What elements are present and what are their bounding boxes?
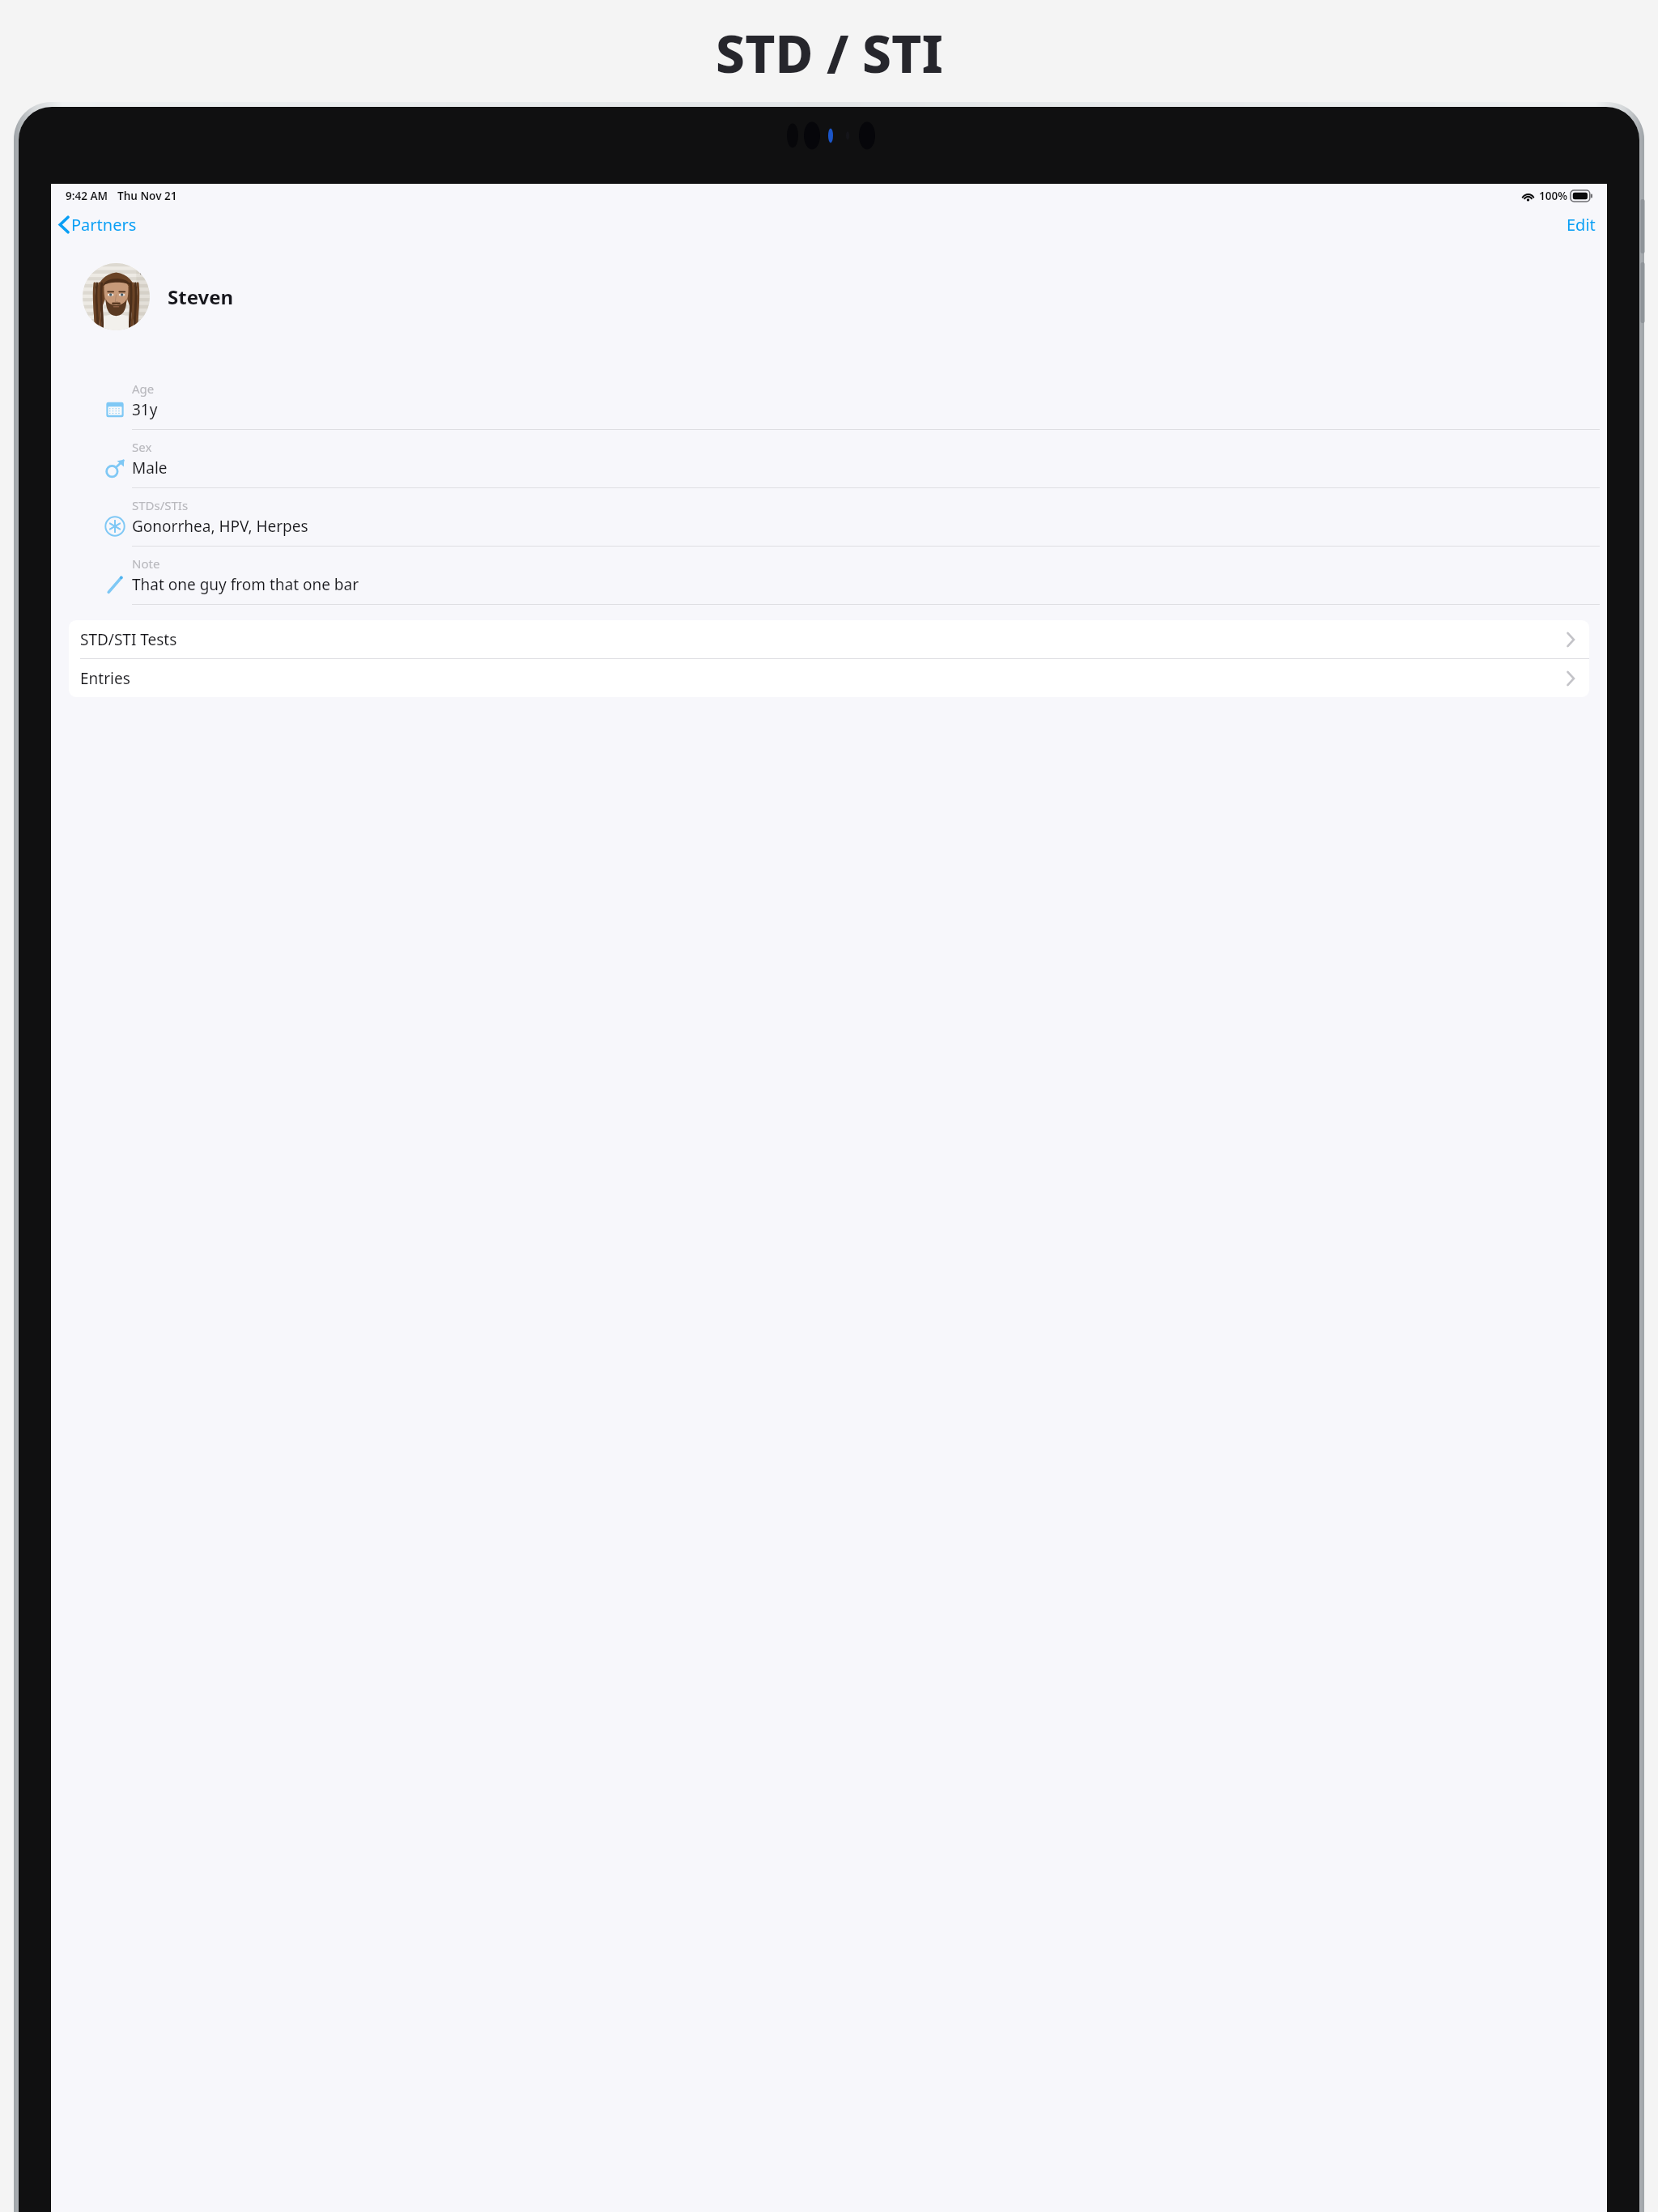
staticText: Partners xyxy=(71,214,137,236)
button[interactable]: STD/STI Tests xyxy=(69,620,1589,658)
staticText: Gonorrhea, HPV, Herpes xyxy=(132,516,308,537)
staticText: Steven xyxy=(168,283,234,310)
staticText: STDs/STIs xyxy=(132,497,189,513)
button[interactable]: Age xyxy=(51,381,1607,439)
staticText: 100% xyxy=(1539,189,1567,203)
button[interactable]: Steven xyxy=(51,257,1607,337)
button[interactable]: Partners xyxy=(51,211,145,239)
staticText: That one guy from that one bar xyxy=(132,574,359,595)
staticText: Track your and your partners' tests xyxy=(478,93,1180,151)
button[interactable]: Entries xyxy=(69,659,1589,697)
button[interactable]: STDs/STIs xyxy=(51,497,1607,555)
staticText: 31y xyxy=(132,399,158,420)
staticText: Sex xyxy=(132,439,152,455)
button[interactable]: Note xyxy=(51,555,1607,614)
button[interactable]: Sex xyxy=(51,439,1607,497)
staticText: Male xyxy=(132,457,168,479)
staticText: 9:42 AM xyxy=(66,189,108,203)
staticText: Note xyxy=(132,555,160,572)
staticText: Edit xyxy=(1567,214,1596,236)
staticText: STD/STI Tests xyxy=(80,629,177,650)
staticText: Thu Nov 21 xyxy=(117,189,177,203)
staticText: Age xyxy=(132,381,155,397)
staticText: STD / STI xyxy=(716,18,943,88)
staticText: Entries xyxy=(80,668,130,689)
button[interactable]: Edit xyxy=(1555,211,1607,239)
